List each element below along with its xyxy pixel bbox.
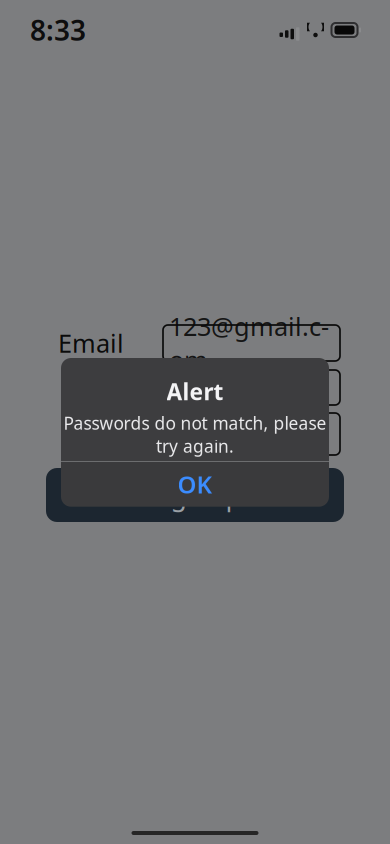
staticText: 123@gmail.com: [169, 309, 329, 377]
staticText: try again.: [156, 435, 234, 458]
staticText: Sign up: [148, 477, 241, 513]
staticText: OK: [177, 468, 212, 500]
staticText: Email: [58, 326, 124, 360]
button[interactable]: Email field: [163, 325, 340, 361]
button[interactable]: OK: [61, 462, 329, 507]
button[interactable]: Password field: [163, 370, 340, 405]
button[interactable]: Sign up: [46, 468, 344, 522]
button[interactable]: Password field: [163, 413, 340, 455]
staticText: Alert: [166, 376, 223, 406]
staticText: Passwords do not match, please: [63, 411, 326, 434]
staticText: 8:33: [30, 11, 86, 49]
